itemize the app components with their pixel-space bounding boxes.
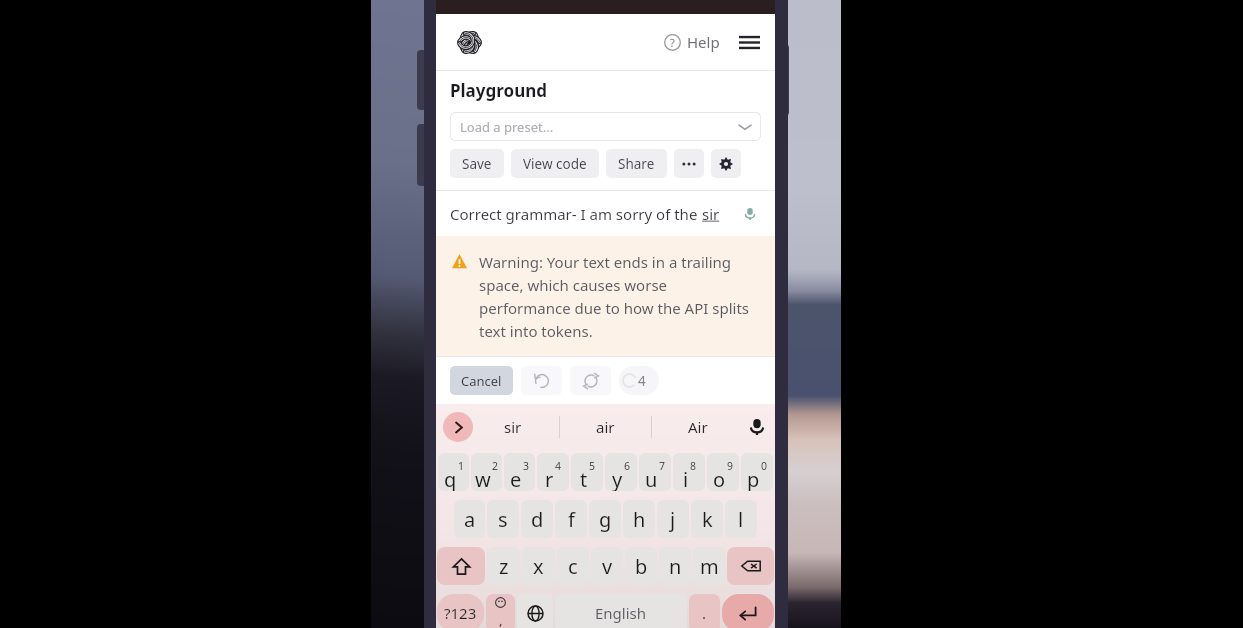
button[interactable]: g [589, 500, 621, 538]
staticText: j [670, 506, 676, 533]
staticText: Save [462, 155, 492, 173]
button[interactable]: s [487, 500, 519, 538]
staticText: l [738, 506, 744, 533]
staticText: Share [618, 155, 655, 173]
staticText: , [499, 611, 503, 628]
button[interactable]: Symbols [437, 594, 484, 628]
staticText: air [596, 417, 615, 437]
button[interactable]: l [725, 500, 757, 538]
staticText: 5 [589, 459, 596, 473]
staticText: 1 [458, 459, 465, 473]
staticText: 9 [727, 459, 734, 473]
button[interactable]: u [639, 453, 671, 491]
button[interactable]: Expand toolbar [443, 412, 473, 442]
button[interactable]: Enter [722, 594, 774, 628]
button[interactable]: Load a preset... [450, 112, 761, 141]
button[interactable]: t [571, 453, 603, 491]
button[interactable]: v [591, 547, 623, 585]
staticText: sir [702, 204, 720, 224]
staticText: y [612, 466, 623, 491]
staticText: 4 [638, 372, 646, 390]
button[interactable]: j [657, 500, 689, 538]
staticText: 0 [761, 459, 768, 473]
button[interactable]: x [522, 547, 555, 585]
staticText: sir [504, 417, 522, 437]
button[interactable]: d [521, 500, 553, 538]
staticText: Air [688, 417, 708, 437]
staticText: v [602, 553, 613, 580]
button[interactable]: q [438, 453, 469, 491]
button[interactable]: Shift [437, 547, 485, 585]
staticText: n [669, 553, 682, 580]
staticText: t [580, 466, 588, 491]
button[interactable]: Undo [521, 366, 562, 395]
button[interactable]: Share [606, 149, 667, 178]
staticText: g [599, 506, 612, 533]
button[interactable]: i [673, 453, 705, 491]
button[interactable]: Change language [517, 594, 553, 628]
staticText: b [635, 553, 648, 580]
staticText: h [633, 506, 646, 533]
staticText: o [713, 466, 726, 491]
button[interactable]: OpenAI [454, 27, 484, 57]
button[interactable]: Space [555, 594, 687, 628]
staticText: . [702, 603, 707, 623]
button[interactable]: View code [511, 149, 599, 178]
button[interactable]: Cancel [450, 366, 513, 395]
button[interactable]: a [454, 500, 485, 538]
button[interactable]: Dictate [741, 205, 759, 223]
staticText: 4 [555, 459, 562, 473]
button[interactable]: sir [467, 404, 559, 449]
staticText: Load a preset... [460, 118, 554, 136]
staticText: w [475, 466, 491, 491]
button[interactable]: 4 [619, 366, 659, 395]
staticText: Playground [450, 79, 547, 102]
button[interactable]: r [537, 453, 569, 491]
staticText: m [700, 553, 719, 580]
staticText: 6 [624, 459, 631, 473]
button[interactable]: c [557, 547, 589, 585]
staticText: d [531, 506, 544, 533]
staticText: 7 [659, 459, 666, 473]
button[interactable]: Settings [711, 149, 741, 178]
button[interactable]: Regenerate [570, 366, 611, 395]
button[interactable]: ? [660, 28, 724, 56]
staticText: ?123 [444, 603, 477, 623]
button[interactable]: Menu [735, 28, 763, 56]
button[interactable]: More options [674, 149, 704, 178]
staticText: English [595, 603, 647, 623]
button[interactable]: e [504, 453, 535, 491]
staticText: a [464, 506, 476, 533]
staticText: 8 [690, 459, 697, 473]
button[interactable]: Backspace [727, 547, 774, 585]
button[interactable]: m [693, 547, 725, 585]
button[interactable]: Period [689, 594, 720, 628]
staticText: Correct grammar- I am sorry of the [450, 204, 702, 224]
button[interactable]: Save [450, 149, 504, 178]
staticText: Cancel [461, 372, 502, 390]
button[interactable]: z [487, 547, 520, 585]
staticText: View code [523, 155, 587, 173]
button[interactable]: o [707, 453, 739, 491]
staticText: ? [670, 35, 675, 50]
button[interactable]: n [659, 547, 691, 585]
button[interactable]: y [605, 453, 637, 491]
button[interactable]: w [471, 453, 502, 491]
staticText: k [702, 506, 713, 533]
staticText: e [510, 466, 522, 491]
button[interactable]: Emoji [486, 594, 515, 628]
button[interactable]: Voice input [745, 415, 769, 439]
button[interactable]: k [691, 500, 723, 538]
button[interactable]: Air [652, 404, 743, 449]
staticText: c [568, 553, 578, 580]
button[interactable]: b [625, 547, 657, 585]
staticText: q [444, 466, 457, 491]
staticText: u [645, 466, 658, 491]
button[interactable]: air [560, 404, 651, 449]
button[interactable]: p [741, 453, 773, 491]
button[interactable]: h [623, 500, 655, 538]
staticText: p [747, 466, 760, 491]
staticText: i [683, 466, 689, 491]
staticText: 3 [523, 459, 530, 473]
button[interactable]: f [555, 500, 587, 538]
